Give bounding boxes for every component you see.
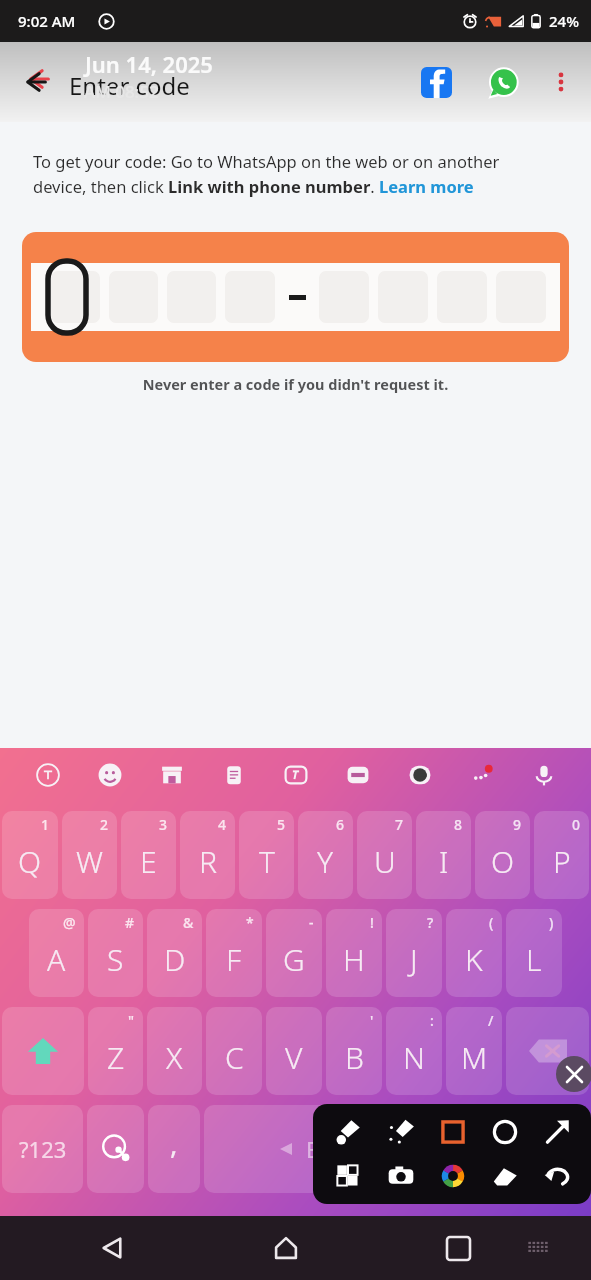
button[interactable]: Eraser (479, 1162, 531, 1190)
button[interactable]: Recent apps (412, 1216, 505, 1280)
staticText: 8 (454, 815, 463, 834)
staticText: ( (489, 913, 494, 932)
button[interactable]: ' (326, 1007, 382, 1095)
button[interactable]: 3 (121, 811, 176, 899)
button[interactable]: Close markup (556, 1056, 591, 1092)
staticText: E (140, 841, 157, 882)
button[interactable]: Facebook (414, 60, 458, 104)
staticText: 24% (549, 11, 579, 31)
button[interactable]: Arrow (531, 1118, 583, 1146)
button[interactable]: Shift (2, 1007, 84, 1095)
button[interactable]: More (451, 753, 513, 797)
staticText: Never enter a code if you didn't request… (0, 374, 591, 394)
button[interactable]: V (266, 1007, 322, 1095)
staticText: L (526, 939, 542, 980)
button[interactable]: 7 (357, 811, 412, 899)
button[interactable]: ) (506, 909, 562, 997)
staticText: 2 (100, 815, 109, 834)
button[interactable]: Back (14, 60, 58, 104)
button[interactable]: GIF (389, 753, 451, 797)
button[interactable]: 5 (239, 811, 294, 899)
button[interactable]: Hide keyboard (505, 1216, 571, 1280)
button[interactable]: Back (66, 1216, 159, 1280)
button[interactable]: WhatsApp (481, 60, 525, 104)
staticText: ' (370, 1011, 374, 1030)
button[interactable]: 2 (62, 811, 117, 899)
button[interactable]: 9 (475, 811, 530, 899)
staticText: W (76, 841, 103, 882)
staticText: R (199, 841, 217, 882)
button[interactable]: ( (446, 909, 502, 997)
staticText: - (309, 913, 314, 932)
button[interactable]: 1 (2, 811, 58, 899)
staticText: : (430, 1011, 434, 1030)
staticText: O (491, 841, 515, 882)
button[interactable]: & (147, 909, 202, 997)
button[interactable]: Home (239, 1216, 332, 1280)
button[interactable] (521, 1105, 589, 1193)
button[interactable]: Sticker (87, 1105, 144, 1193)
button[interactable] (22, 232, 569, 362)
button[interactable]: : (386, 1007, 442, 1095)
staticText: X (166, 1037, 183, 1078)
staticText: D (164, 939, 186, 980)
button[interactable]: Space, English (204, 1105, 456, 1193)
button[interactable]: Voice input (513, 753, 575, 797)
button[interactable]: Emoji (79, 753, 141, 797)
button[interactable]: , (148, 1105, 200, 1193)
staticText: G (283, 939, 305, 980)
button[interactable]: 4 (180, 811, 235, 899)
button[interactable]: Backspace (506, 1007, 589, 1095)
button[interactable]: Translate (16, 753, 79, 797)
button[interactable]: * (206, 909, 262, 997)
button[interactable]: Clipboard (203, 753, 265, 797)
staticText: V (285, 1037, 303, 1078)
staticText: # (125, 913, 135, 932)
button[interactable]: Ellipse (479, 1118, 531, 1146)
button[interactable]: More options (541, 62, 581, 102)
button[interactable]: - (266, 909, 322, 997)
button[interactable]: # (88, 909, 143, 997)
button[interactable]: Numbers (327, 753, 389, 797)
button[interactable]: ! (326, 909, 382, 997)
button[interactable]: Undo (531, 1162, 583, 1190)
button[interactable]: Highlighter (374, 1118, 427, 1146)
staticText: 9 (513, 815, 522, 834)
staticText: Z (107, 1037, 125, 1078)
staticText: J (410, 939, 418, 980)
staticText: ! (370, 913, 374, 932)
button[interactable]: Camera (374, 1162, 427, 1190)
button[interactable]: 6 (298, 811, 353, 899)
button[interactable]: ?123 (2, 1105, 83, 1193)
button[interactable]: Brush (321, 1118, 374, 1146)
button[interactable]: @ (29, 909, 84, 997)
button[interactable]: Mosaic (321, 1162, 374, 1190)
button[interactable]: Color (427, 1162, 479, 1190)
button[interactable]: Store (141, 753, 203, 797)
staticText: To get your code: Go to WhatsApp on the … (33, 150, 551, 197)
staticText: N (403, 1037, 425, 1078)
button[interactable]: " (88, 1007, 143, 1095)
staticText: 5 (277, 815, 286, 834)
staticText: K (465, 939, 483, 980)
button[interactable]: Text style (265, 753, 327, 797)
staticText: @ (63, 913, 76, 932)
button[interactable]: X (147, 1007, 202, 1095)
staticText: * (246, 913, 254, 932)
staticText: 7 (395, 815, 404, 834)
button[interactable]: / (446, 1007, 502, 1095)
staticText: 9:02 AM (18, 11, 76, 31)
button[interactable]: 0 (534, 811, 589, 899)
staticText: T (259, 841, 275, 882)
button[interactable] (460, 1105, 517, 1193)
staticText: M (461, 1037, 488, 1078)
staticText: I (439, 841, 449, 882)
staticText: Q (18, 841, 42, 882)
button[interactable]: C (206, 1007, 262, 1095)
staticText: 4 (218, 815, 227, 834)
staticText: 6 (336, 815, 345, 834)
staticText: S (107, 939, 124, 980)
button[interactable]: ? (386, 909, 442, 997)
button[interactable]: 8 (416, 811, 471, 899)
button[interactable]: Rectangle (427, 1118, 479, 1146)
